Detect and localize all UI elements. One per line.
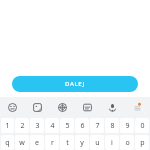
button[interactable]: Emoji [0, 97, 25, 118]
staticText: e [35, 138, 39, 148]
staticText: w [19, 138, 25, 148]
staticText: t [66, 138, 69, 148]
button[interactable]: Clipboard [75, 97, 100, 118]
staticText: r [51, 138, 54, 148]
staticText: 9 [125, 121, 130, 131]
button[interactable]: p [135, 135, 149, 150]
button[interactable]: 2 [15, 118, 29, 133]
staticText: 5 [65, 121, 70, 131]
button[interactable]: 3 [30, 118, 44, 133]
button[interactable]: u [90, 135, 104, 150]
button[interactable]: GIF [50, 97, 75, 118]
button[interactable]: 1 [1, 118, 14, 133]
staticText: 0 [140, 121, 145, 131]
staticText: i [111, 138, 113, 148]
staticText: 4 [50, 121, 55, 131]
button[interactable]: w [15, 135, 29, 150]
button[interactable]: DALEJ [12, 76, 138, 92]
staticText: u [95, 138, 100, 148]
staticText: DALEJ [65, 80, 85, 88]
staticText: 7 [95, 121, 100, 131]
button[interactable]: Stickers [25, 97, 50, 118]
button[interactable]: 0 [135, 118, 149, 133]
button[interactable]: y [75, 135, 89, 150]
staticText: q [5, 138, 10, 148]
button[interactable]: i [105, 135, 119, 150]
staticText: y [80, 138, 84, 148]
button[interactable]: 7 [90, 118, 104, 133]
button[interactable]: 8 [105, 118, 119, 133]
button[interactable]: More options [125, 97, 150, 118]
staticText: 8 [110, 121, 115, 131]
button[interactable]: 6 [75, 118, 89, 133]
staticText: p [140, 138, 145, 148]
button[interactable]: 5 [60, 118, 74, 133]
staticText: 3 [35, 121, 40, 131]
staticText: o [125, 138, 130, 148]
button[interactable]: t [60, 135, 74, 150]
button[interactable]: Voice input [100, 97, 125, 118]
button[interactable]: o [120, 135, 134, 150]
button[interactable]: r [45, 135, 59, 150]
button[interactable]: q [1, 135, 14, 150]
staticText: 2 [20, 121, 25, 131]
button[interactable]: e [30, 135, 44, 150]
staticText: 6 [80, 121, 85, 131]
button[interactable]: 4 [45, 118, 59, 133]
staticText: 1 [5, 121, 10, 131]
button[interactable]: 9 [120, 118, 134, 133]
